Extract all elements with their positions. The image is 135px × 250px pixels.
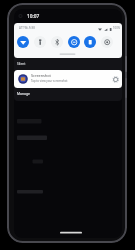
staticText: Silent [17, 62, 26, 66]
staticText: 10:07 [27, 13, 40, 20]
staticText: Tap to view your screenshot [31, 79, 68, 83]
staticText: ATT Wi-Fi 88 [19, 26, 35, 30]
button[interactable]: Screenshot [14, 70, 122, 88]
button[interactable] [101, 36, 113, 48]
button[interactable] [84, 36, 96, 48]
staticText: 100% [113, 26, 121, 30]
button[interactable]: Manage [14, 88, 122, 101]
button[interactable] [51, 36, 63, 48]
button[interactable] [34, 36, 46, 48]
staticText: Screenshot [31, 73, 51, 78]
button[interactable] [68, 36, 80, 48]
button[interactable] [17, 36, 29, 48]
staticText: Manage [17, 91, 30, 96]
